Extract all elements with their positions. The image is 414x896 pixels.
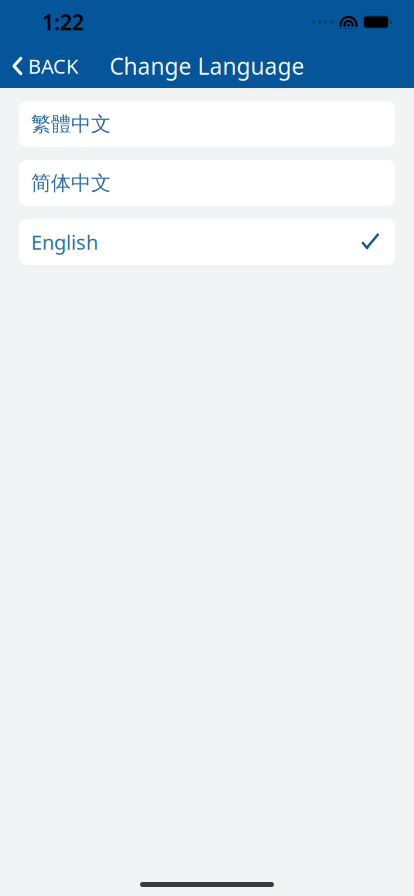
button[interactable]: 繁體中文 xyxy=(19,101,395,147)
staticText: Change Language xyxy=(109,51,304,81)
button[interactable]: 简体中文 xyxy=(19,160,395,206)
staticText: English xyxy=(31,229,98,255)
staticText: BACK xyxy=(28,53,78,79)
button[interactable]: English xyxy=(19,219,395,265)
button[interactable]: BACK xyxy=(0,45,88,87)
staticText: 简体中文 xyxy=(31,171,111,195)
staticText: 繁體中文 xyxy=(31,112,111,136)
staticText: 1:22 xyxy=(42,8,84,36)
